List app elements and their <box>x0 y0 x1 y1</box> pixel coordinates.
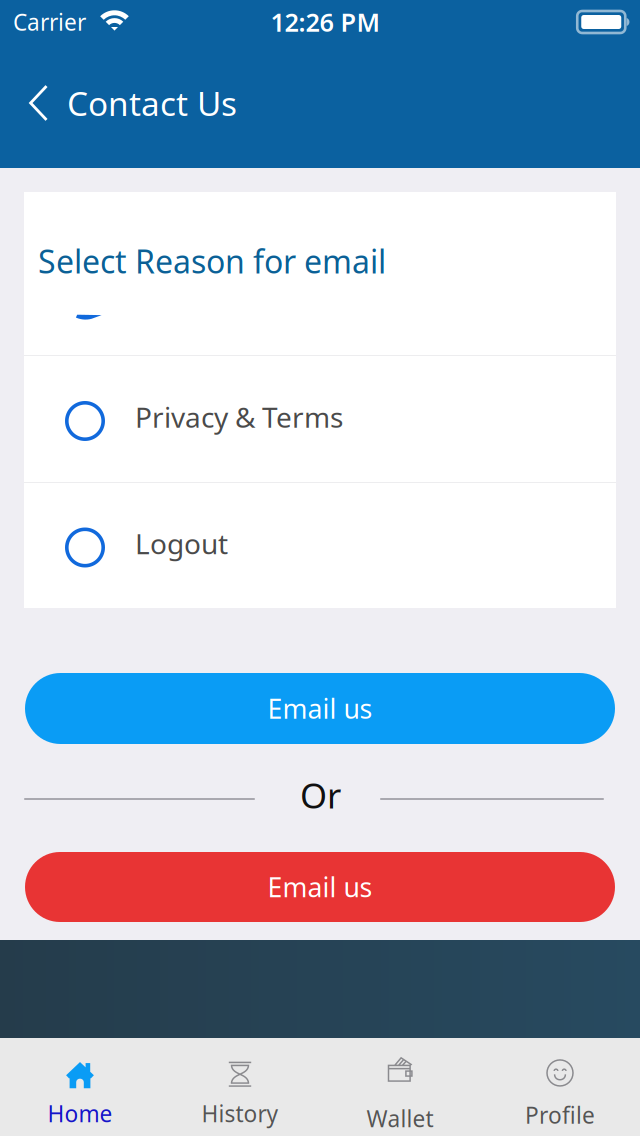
staticText: Carrier <box>13 7 86 37</box>
staticText: Email us <box>267 691 372 726</box>
button[interactable]: Home <box>0 1038 160 1136</box>
staticText: Home <box>47 1098 112 1128</box>
staticText: History <box>201 1098 278 1128</box>
button[interactable]: Email us <box>25 673 615 744</box>
staticText: Contact Us <box>67 81 237 125</box>
staticText: Profile <box>525 1100 595 1130</box>
staticText: Privacy & Terms <box>135 398 343 436</box>
button[interactable]: Logout <box>24 483 616 608</box>
staticText: Or <box>300 772 341 818</box>
staticText: 12:26 PM <box>270 5 380 39</box>
button[interactable]: Wallet <box>320 1038 480 1136</box>
button[interactable]: Privacy & Terms <box>24 356 616 482</box>
staticText: Wallet <box>366 1103 433 1133</box>
staticText: Logout <box>135 525 228 562</box>
button[interactable]: Profile <box>480 1038 640 1136</box>
button[interactable]: Email us <box>25 852 615 922</box>
staticText: Email us <box>267 869 372 905</box>
button[interactable]: Contact Us <box>0 66 255 146</box>
button[interactable]: History <box>160 1038 320 1136</box>
staticText: Select Reason for email <box>38 240 386 282</box>
